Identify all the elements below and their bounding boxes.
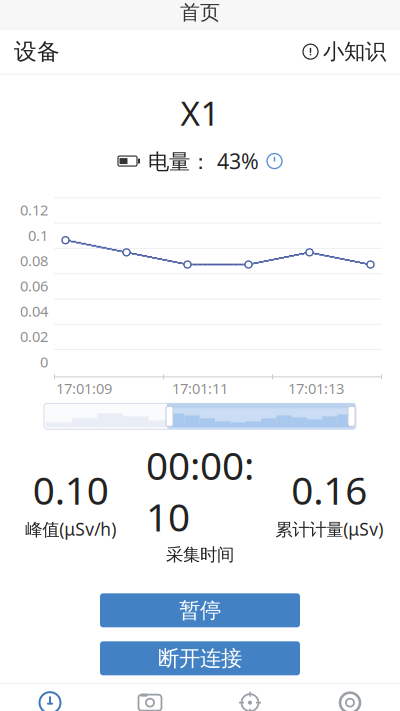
- staticText: 0.12: [20, 200, 48, 220]
- button[interactable]: 拍照: [100, 687, 200, 711]
- staticText: 累计计量(μSv): [275, 517, 383, 540]
- staticText: 00:00:10: [146, 439, 254, 542]
- staticText: 首页: [180, 0, 220, 25]
- staticText: 断开连接: [158, 645, 242, 671]
- staticText: 0.08: [20, 251, 48, 270]
- button[interactable]: 小知识: [303, 33, 386, 71]
- staticText: 0.10: [33, 464, 109, 515]
- staticText: 0: [40, 352, 48, 371]
- staticText: 17:01:13: [288, 379, 344, 398]
- staticText: 峰值(μSv/h): [25, 517, 116, 540]
- staticText: 采集时间: [166, 544, 234, 565]
- staticText: 0.16: [291, 464, 367, 515]
- staticText: 0.1: [28, 225, 48, 245]
- button[interactable]: 定位: [200, 687, 300, 711]
- staticText: 0.06: [20, 276, 48, 296]
- staticText: 暂停: [179, 597, 221, 623]
- staticText: 小知识: [323, 39, 386, 65]
- button[interactable]: 设置: [300, 687, 400, 711]
- staticText: 设备: [14, 38, 60, 65]
- staticText: 0.02: [20, 327, 48, 346]
- staticText: X1: [180, 91, 219, 135]
- staticText: 17:01:11: [172, 379, 228, 398]
- button[interactable]: 组件: [0, 687, 100, 711]
- staticText: 电量： 43%: [148, 147, 259, 175]
- staticText: 17:01:09: [56, 379, 112, 398]
- staticText: 0.04: [20, 301, 48, 321]
- button[interactable]: 断开连接: [100, 641, 300, 675]
- button[interactable]: 暂停: [100, 593, 300, 627]
